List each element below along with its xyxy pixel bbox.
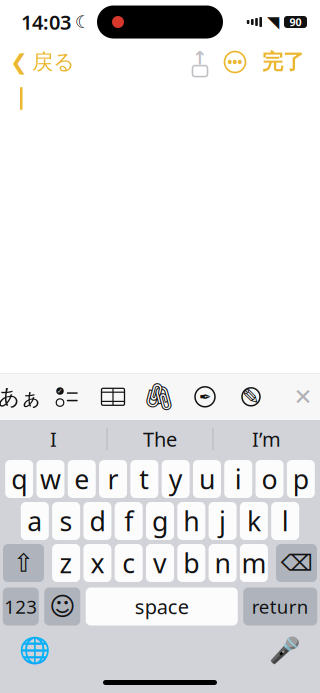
staticText: v [153, 545, 167, 581]
staticText: あぁ [0, 384, 42, 410]
staticText: 完了 [262, 49, 304, 75]
staticText: ••• [227, 54, 242, 70]
button[interactable]: v [146, 544, 174, 582]
button[interactable]: Switch keyboard [13, 631, 57, 669]
staticText: w [40, 461, 61, 497]
staticText: e [74, 461, 89, 497]
button[interactable]: k [240, 502, 268, 540]
button[interactable]: n [209, 544, 237, 582]
staticText: r [108, 461, 119, 497]
button[interactable]: Dictation [263, 631, 307, 669]
button[interactable]: b [177, 544, 205, 582]
button[interactable]: u [193, 460, 221, 498]
button[interactable]: c [115, 544, 143, 582]
staticText: I [50, 426, 57, 452]
button[interactable]: l [271, 502, 299, 540]
button[interactable]: j [209, 502, 237, 540]
button[interactable]: g [146, 502, 174, 540]
button[interactable]: Checklist [44, 374, 90, 419]
button[interactable]: p [287, 460, 315, 498]
button[interactable]: o [256, 460, 284, 498]
staticText: f [124, 503, 133, 539]
button[interactable]: x [83, 544, 111, 582]
button[interactable]: 完了 [253, 43, 313, 81]
staticText: ❮ [10, 50, 28, 74]
staticText: q [11, 461, 27, 497]
staticText: c [122, 545, 135, 581]
button[interactable]: Emoji [44, 587, 80, 625]
staticText: k [247, 503, 261, 539]
staticText: ↑ [192, 47, 208, 69]
staticText: t [139, 461, 149, 497]
button[interactable]: Close toolbar [282, 374, 320, 419]
button[interactable]: h [177, 502, 205, 540]
button[interactable]: e [68, 460, 96, 498]
staticText: ✎ [242, 385, 260, 409]
staticText: 123 [4, 594, 37, 619]
staticText: p [293, 461, 309, 497]
staticText: n [215, 545, 231, 581]
button[interactable]: f [115, 502, 143, 540]
button[interactable]: q [5, 460, 33, 498]
button[interactable]: d [83, 502, 111, 540]
button[interactable]: I [0, 421, 106, 457]
button[interactable]: t [130, 460, 158, 498]
staticText: 戻る [32, 49, 75, 75]
button[interactable]: r [99, 460, 127, 498]
button[interactable]: a [21, 502, 49, 540]
button[interactable]: Share [183, 46, 217, 78]
staticText: ✕ [293, 384, 312, 410]
staticText: ◥ [267, 13, 279, 31]
button[interactable]: I’m [213, 421, 319, 457]
staticText: space [135, 593, 189, 620]
staticText: The [143, 426, 177, 452]
staticText: I’m [252, 426, 281, 452]
button[interactable]: Shift [3, 544, 44, 582]
button[interactable]: Table [90, 374, 136, 419]
staticText: ✓ [57, 387, 63, 395]
button[interactable]: s [52, 502, 80, 540]
staticText: return [252, 594, 309, 619]
staticText: i [235, 461, 242, 497]
staticText: l [282, 503, 289, 539]
button[interactable]: あぁ [0, 374, 44, 419]
staticText: u [199, 461, 215, 497]
button[interactable]: 123 [3, 587, 39, 625]
staticText: 🎤 [269, 635, 301, 664]
button[interactable]: space [86, 587, 238, 625]
staticText: z [60, 545, 73, 581]
button[interactable]: Delete [276, 544, 317, 582]
staticText: ☾ [75, 12, 91, 32]
button[interactable]: ❮ [0, 43, 75, 81]
button[interactable]: y [162, 460, 190, 498]
staticText: ✒ [199, 388, 211, 405]
staticText: 🖇 [142, 382, 176, 412]
button[interactable]: w [36, 460, 64, 498]
staticText: 90 [289, 15, 301, 29]
staticText: m [241, 545, 266, 581]
staticText: ⇧ [13, 549, 34, 577]
button[interactable]: i [224, 460, 252, 498]
staticText: 🌐 [19, 635, 51, 664]
button[interactable]: The [107, 421, 212, 457]
button[interactable]: More options [217, 46, 253, 78]
staticText: s [60, 503, 73, 539]
staticText: x [90, 545, 104, 581]
button[interactable]: return [243, 587, 317, 625]
staticText: g [152, 503, 168, 539]
staticText: y [169, 461, 183, 497]
staticText: d [89, 503, 105, 539]
button[interactable]: Pen [182, 374, 228, 419]
button[interactable]: m [240, 544, 268, 582]
button[interactable]: Attachment [136, 374, 182, 419]
staticText: b [183, 545, 199, 581]
button[interactable]: Markup [228, 374, 274, 419]
staticText: a [27, 503, 42, 539]
button[interactable]: z [52, 544, 80, 582]
staticText: j [219, 503, 226, 539]
staticText: ⌫ [280, 550, 312, 576]
staticText: 14:03 [21, 9, 71, 35]
staticText: ☺ [49, 592, 75, 621]
staticText: o [262, 461, 278, 497]
staticText: h [183, 503, 199, 539]
